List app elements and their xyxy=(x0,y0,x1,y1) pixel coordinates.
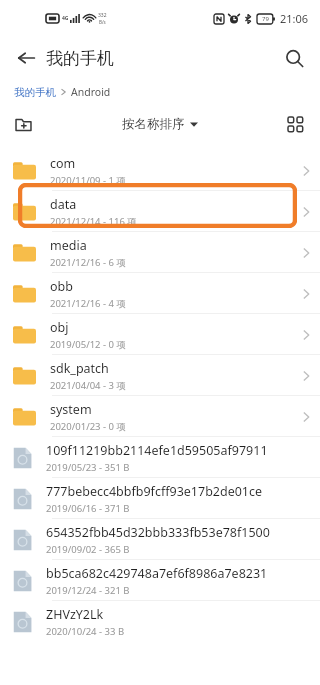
staticText: ZHVzY2Lk xyxy=(46,606,104,623)
staticText: 4G xyxy=(62,15,69,22)
staticText: bb5ca682c429748a7ef6f8986a7e8231 xyxy=(46,565,268,582)
staticText: 332 xyxy=(98,12,107,19)
staticText: com xyxy=(50,155,76,172)
button[interactable]: 777bebecc4bbfb9fcff93e17b2de01ce xyxy=(0,478,320,519)
staticText: 2021/12/14 - 116 项 xyxy=(50,215,137,228)
staticText: 2019/12/24 - 321 B xyxy=(46,584,130,597)
staticText: 2019/05/12 - 0 项 xyxy=(50,338,126,351)
staticText: 2019/06/16 - 371 B xyxy=(46,502,130,515)
staticText: 79 xyxy=(262,15,269,23)
button[interactable]: system xyxy=(0,396,320,437)
button[interactable]: bb5ca682c429748a7ef6f8986a7e8231 xyxy=(0,560,320,601)
staticText: system xyxy=(50,401,92,418)
staticText: sdk_patch xyxy=(50,360,109,377)
button[interactable]: 109f11219bb2114efe1d59505af97911 xyxy=(0,437,320,478)
staticText: 777bebecc4bbfb9fcff93e17b2de01ce xyxy=(46,483,263,500)
button[interactable]: obj xyxy=(0,314,320,355)
staticText: 2020/10/24 - 33 B xyxy=(46,625,125,638)
button[interactable]: sdk_patch xyxy=(0,355,320,396)
staticText: 我的手机 xyxy=(14,86,56,99)
staticText: 654352fbb45d32bbb333fb53e78f1500 xyxy=(46,524,270,541)
button[interactable]: 654352fbb45d32bbb333fb53e78f1500 xyxy=(0,519,320,560)
button[interactable]: 按名称排序 xyxy=(122,116,198,132)
staticText: obb xyxy=(50,278,73,295)
button[interactable]: obb xyxy=(0,273,320,314)
button[interactable]: ZHVzY2Lk xyxy=(0,601,320,642)
staticText: 2019/09/02 - 365 B xyxy=(46,543,130,556)
staticText: 2020/11/09 - 1 项 xyxy=(50,174,126,187)
button[interactable]: 网格视图 xyxy=(278,107,312,141)
button[interactable]: com xyxy=(0,150,320,191)
staticText: 2021/12/16 - 6 项 xyxy=(50,256,126,269)
staticText: 2019/05/23 - 351 B xyxy=(46,461,130,474)
button[interactable]: 返回 xyxy=(8,40,44,76)
staticText: data xyxy=(50,196,77,213)
staticText: media xyxy=(50,237,87,254)
staticText: 2021/12/16 - 4 项 xyxy=(50,297,126,310)
staticText: Android xyxy=(71,85,111,99)
staticText: 按名称排序 xyxy=(122,116,185,132)
staticText: obj xyxy=(50,319,69,336)
button[interactable]: 搜索 xyxy=(276,40,312,76)
staticText: 2021/04/04 - 3 项 xyxy=(50,379,126,392)
staticText: 我的手机 xyxy=(46,48,114,69)
staticText: 109f11219bb2114efe1d59505af97911 xyxy=(46,442,268,459)
button[interactable]: media xyxy=(0,232,320,273)
staticText: 2020/01/23 - 0 项 xyxy=(50,420,126,433)
staticText: B/s xyxy=(99,19,106,25)
staticText: 21:06 xyxy=(280,11,309,26)
button[interactable]: 新建文件夹 xyxy=(6,107,40,141)
button[interactable]: data xyxy=(0,191,320,232)
button[interactable]: 我的手机 xyxy=(14,86,56,99)
